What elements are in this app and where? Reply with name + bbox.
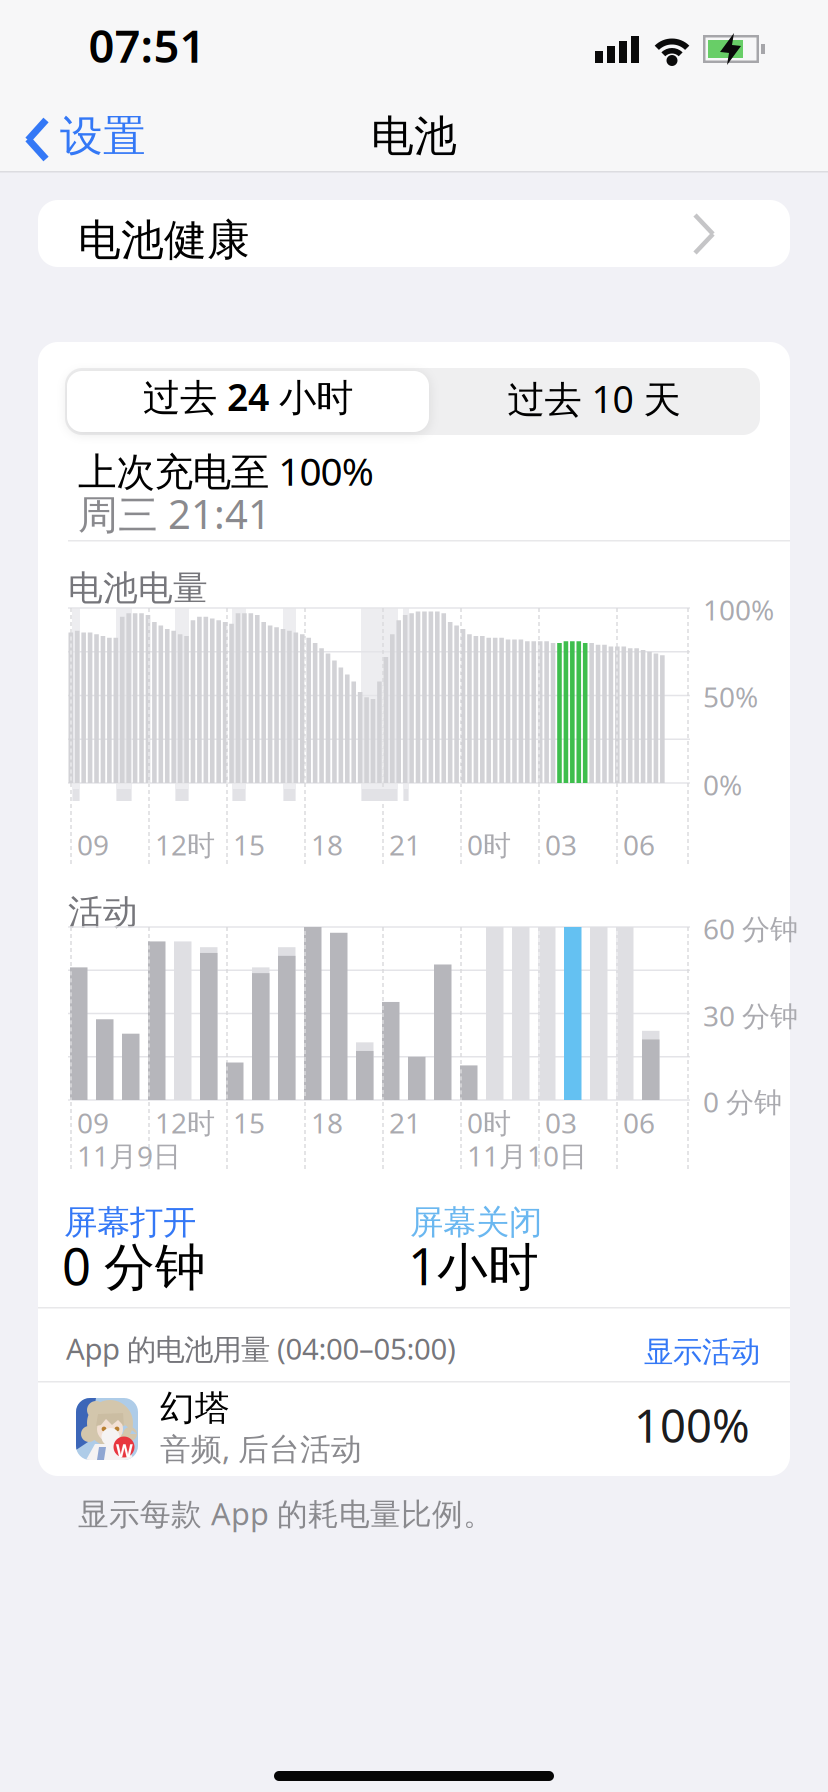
staticText: 显示活动 xyxy=(644,1334,760,1370)
staticText: 0时 xyxy=(467,826,511,863)
staticText: 50% xyxy=(703,678,758,715)
button[interactable]: 设置 xyxy=(0,5,140,65)
staticText: 0 分钟 xyxy=(703,1083,782,1120)
staticText: 11月10日 xyxy=(467,1137,587,1174)
staticText: 21 xyxy=(389,826,421,863)
staticText: 0% xyxy=(703,766,742,803)
staticText: 电池电量 xyxy=(68,567,208,610)
staticText: 15 xyxy=(233,1104,265,1141)
staticText: 100% xyxy=(634,1395,750,1455)
staticText: 设置 xyxy=(60,110,146,162)
button[interactable]: 屏幕打开 xyxy=(64,1202,384,1298)
button[interactable]: 过去 10 天 xyxy=(429,371,759,432)
staticText: 100% xyxy=(703,591,774,628)
button[interactable]: 过去 24 小时 xyxy=(67,371,429,432)
staticText: 电池健康 xyxy=(78,214,250,266)
button[interactable]: W xyxy=(38,1382,790,1476)
staticText: 过去 24 小时 xyxy=(143,372,353,421)
staticText: 音频, 后台活动 xyxy=(160,1428,362,1469)
staticText: 12时 xyxy=(155,826,215,863)
staticText: 30 分钟 xyxy=(703,997,798,1034)
staticText: 屏幕关闭 xyxy=(410,1202,542,1243)
staticText: 电池 xyxy=(371,110,457,162)
staticText: 12时 xyxy=(155,1104,215,1141)
staticText: 60 分钟 xyxy=(703,910,798,947)
staticText: 活动 xyxy=(68,891,138,934)
staticText: App 的电池用量 (04:00–05:00) xyxy=(66,1329,456,1368)
button[interactable]: 显示活动 xyxy=(580,1334,760,1370)
staticText: 21 xyxy=(389,1104,421,1141)
staticText: 03 xyxy=(545,1104,577,1141)
staticText: 1小时 xyxy=(408,1232,539,1299)
staticText: 09 xyxy=(77,826,109,863)
staticText: 上次充电至 100% xyxy=(78,445,374,496)
staticText: 06 xyxy=(623,826,655,863)
staticText: 07:51 xyxy=(88,15,205,75)
staticText: 显示每款 App 的耗电量比例。 xyxy=(78,1493,494,1534)
staticText: 周三 21:41 xyxy=(78,487,271,540)
staticText: W xyxy=(116,1439,133,1462)
staticText: 03 xyxy=(545,826,577,863)
button[interactable]: 电池健康 xyxy=(38,200,828,1792)
staticText: 18 xyxy=(311,826,343,863)
staticText: 幻塔 xyxy=(160,1387,230,1430)
staticText: 18 xyxy=(311,1104,343,1141)
staticText: 09 xyxy=(77,1104,109,1141)
staticText: 0时 xyxy=(467,1104,511,1141)
staticText: 11月9日 xyxy=(77,1137,181,1174)
staticText: 0 分钟 xyxy=(62,1232,206,1299)
staticText: 06 xyxy=(623,1104,655,1141)
staticText: 屏幕打开 xyxy=(64,1202,196,1243)
staticText: 15 xyxy=(233,826,265,863)
staticText: 过去 10 天 xyxy=(507,374,680,423)
button[interactable]: 屏幕关闭 xyxy=(410,1202,730,1298)
